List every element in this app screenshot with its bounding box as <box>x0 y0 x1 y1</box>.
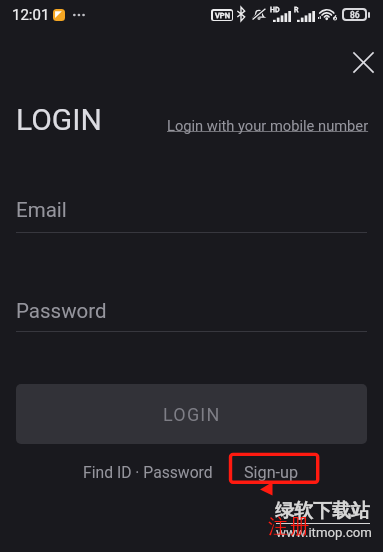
button[interactable]: Close <box>341 40 383 84</box>
button[interactable]: Login with your mobile number <box>163 115 373 136</box>
button[interactable]: LOGIN <box>16 384 367 444</box>
staticText: Login with your mobile number <box>167 117 369 134</box>
button[interactable]: Find ID · Password <box>79 459 217 485</box>
staticText: www.itmop.com <box>276 525 372 540</box>
staticText: Password <box>16 299 107 323</box>
staticText: Find ID · Password <box>83 463 213 481</box>
staticText: Sign-up <box>244 463 299 482</box>
staticText: R <box>294 6 299 14</box>
staticText: 12:01 <box>12 6 50 24</box>
staticText: 86 <box>350 10 360 19</box>
staticText: LOGIN <box>16 102 102 137</box>
button[interactable]: Sign-up <box>240 459 303 486</box>
staticText: 注册 <box>268 514 312 539</box>
staticText: HD <box>270 6 280 14</box>
staticText: VPN <box>215 11 230 20</box>
staticText: LOGIN <box>163 404 221 425</box>
staticText: 绿软下载站 <box>275 499 370 523</box>
staticText: Email <box>16 198 67 222</box>
